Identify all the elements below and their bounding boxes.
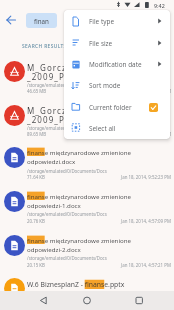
staticText: /storage/emulated/0/Documents bbox=[27, 299, 96, 305]
staticText: /storage/emulated/0/Documents bbox=[27, 125, 96, 131]
staticText: Jan 18, 2014, 4:55:03 PM bbox=[121, 131, 171, 137]
staticText: /storage/emulated/0/Documents/Docs bbox=[27, 255, 107, 261]
staticText: /storage/emulated/0/Documents/Docs bbox=[27, 168, 107, 174]
staticText: Sort mode bbox=[89, 81, 121, 90]
button[interactable] bbox=[29, 291, 58, 310]
button[interactable] bbox=[0, 224, 174, 268]
button[interactable] bbox=[64, 11, 170, 32]
button[interactable] bbox=[5, 14, 17, 26]
staticText: odpowiedzi-2.docx bbox=[27, 245, 81, 253]
staticText: Jan 18, 2014, 4:57:21 PM bbox=[121, 262, 171, 268]
button[interactable] bbox=[72, 291, 101, 310]
button[interactable] bbox=[118, 291, 147, 310]
button[interactable] bbox=[64, 53, 170, 74]
staticText: Jan 18, 2014, 9:52:23 PM bbox=[121, 174, 171, 180]
button[interactable] bbox=[0, 51, 174, 95]
staticText: Jan 18, 2014, 4:55:03 PM bbox=[121, 88, 171, 94]
button[interactable] bbox=[0, 136, 174, 180]
staticText: /storage/emulated/0/Documents bbox=[27, 82, 96, 88]
staticText: Modification date bbox=[89, 60, 142, 69]
staticText: Jan 18, 2014, 4:57:09 PM bbox=[121, 218, 171, 224]
button[interactable] bbox=[64, 96, 170, 117]
staticText: 20.15 KB bbox=[27, 262, 45, 268]
staticText: finan bbox=[34, 17, 49, 25]
button[interactable] bbox=[0, 94, 174, 138]
staticText: SEARCH RESULTS FROM bbox=[22, 43, 84, 50]
staticText: W.6 BiznesplanZ - finanse.pptx bbox=[27, 280, 125, 289]
staticText: M_Gorczyca_B bbox=[27, 62, 94, 73]
staticText: File type bbox=[89, 17, 114, 26]
staticText: M_Gorczyca_B bbox=[27, 105, 94, 116]
button[interactable] bbox=[0, 180, 174, 224]
staticText: odpowiedzi-1.docx bbox=[27, 201, 81, 209]
staticText: 71.64 KB bbox=[27, 174, 45, 180]
staticText: 46.65 MB bbox=[27, 88, 47, 94]
staticText: odpowiedzi.docx bbox=[27, 157, 76, 165]
staticText: 20.76 KB bbox=[27, 218, 45, 224]
staticText: 89.65 MB bbox=[27, 131, 47, 137]
staticText: Current folder bbox=[89, 103, 132, 112]
staticText: finanse międzynarodowe zmienione bbox=[27, 236, 131, 244]
staticText: 9:42 bbox=[154, 2, 165, 9]
staticText: _2009_Podstaw bbox=[27, 114, 99, 125]
button[interactable]: finan bbox=[26, 13, 57, 28]
button[interactable] bbox=[64, 75, 170, 96]
button[interactable] bbox=[64, 117, 170, 138]
staticText: _2009_Podstaw bbox=[27, 71, 99, 82]
button[interactable] bbox=[0, 268, 174, 310]
staticText: finanse międzynarodowe zmienione bbox=[27, 148, 131, 156]
staticText: File size bbox=[89, 39, 113, 48]
staticText: finanse międzynarodowe zmienione bbox=[27, 192, 131, 200]
button[interactable] bbox=[64, 32, 170, 53]
staticText: /storage/emulated/0/Documents/Docs bbox=[27, 211, 107, 217]
button[interactable] bbox=[149, 103, 158, 112]
staticText: Select all bbox=[89, 124, 116, 133]
